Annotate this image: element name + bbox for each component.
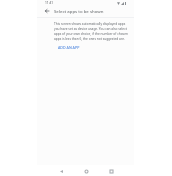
button[interactable]: Navigate up xyxy=(39,6,53,16)
button[interactable]: ADD AN APP xyxy=(54,44,84,51)
staticText: 11:41 xyxy=(45,1,54,5)
button[interactable]: Recent apps xyxy=(105,166,117,176)
staticText: Select apps to be shown xyxy=(54,8,104,14)
staticText: ADD AN APP xyxy=(58,45,80,50)
button[interactable]: Back xyxy=(55,166,67,176)
staticText: This screen shows automatically displaye… xyxy=(54,22,128,41)
button[interactable]: Home xyxy=(80,166,92,176)
